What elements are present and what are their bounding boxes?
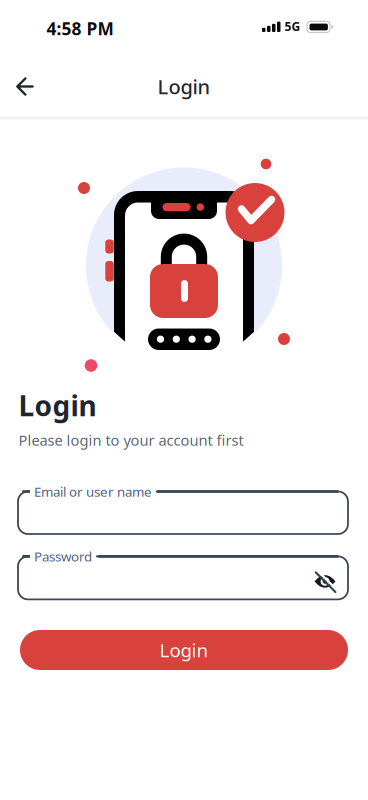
staticText: 5G [284,18,300,34]
button[interactable]: Back [3,64,47,108]
button[interactable]: Email or user name [18,484,348,541]
staticText: Password [34,547,92,565]
button[interactable]: Login [20,630,348,670]
staticText: Login [157,73,210,100]
staticText: Email or user name [34,483,152,500]
button[interactable]: Password [18,549,348,606]
button[interactable]: Show password [305,561,345,601]
staticText: Login [159,638,208,662]
staticText: 4:58 PM [46,17,113,40]
staticText: Please login to your account first [18,430,243,450]
staticText: Login [18,387,96,424]
